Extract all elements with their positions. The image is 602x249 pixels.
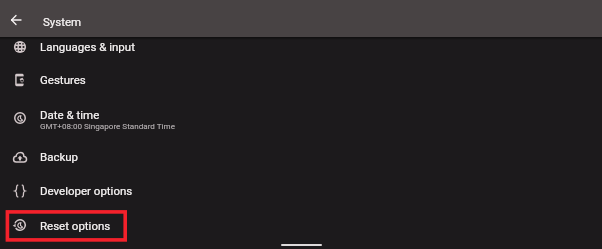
button[interactable]: Languages & input <box>0 30 602 64</box>
staticText: GMT+08:00 Singapore Standard Time <box>40 121 175 130</box>
staticText: Developer options <box>40 184 133 197</box>
button[interactable]: Developer options <box>0 174 602 208</box>
staticText: Reset options <box>40 219 111 232</box>
button[interactable]: Reset options <box>0 208 602 242</box>
button[interactable]: Back <box>6 10 26 30</box>
button[interactable]: Date & time <box>0 101 602 135</box>
staticText: Languages & input <box>40 40 135 53</box>
button[interactable]: Backup <box>0 140 602 174</box>
staticText: Date & time <box>40 108 100 121</box>
staticText: Gestures <box>40 73 86 86</box>
button[interactable]: Gestures <box>0 63 602 97</box>
staticText: Backup <box>40 150 79 163</box>
staticText: System <box>43 15 82 28</box>
